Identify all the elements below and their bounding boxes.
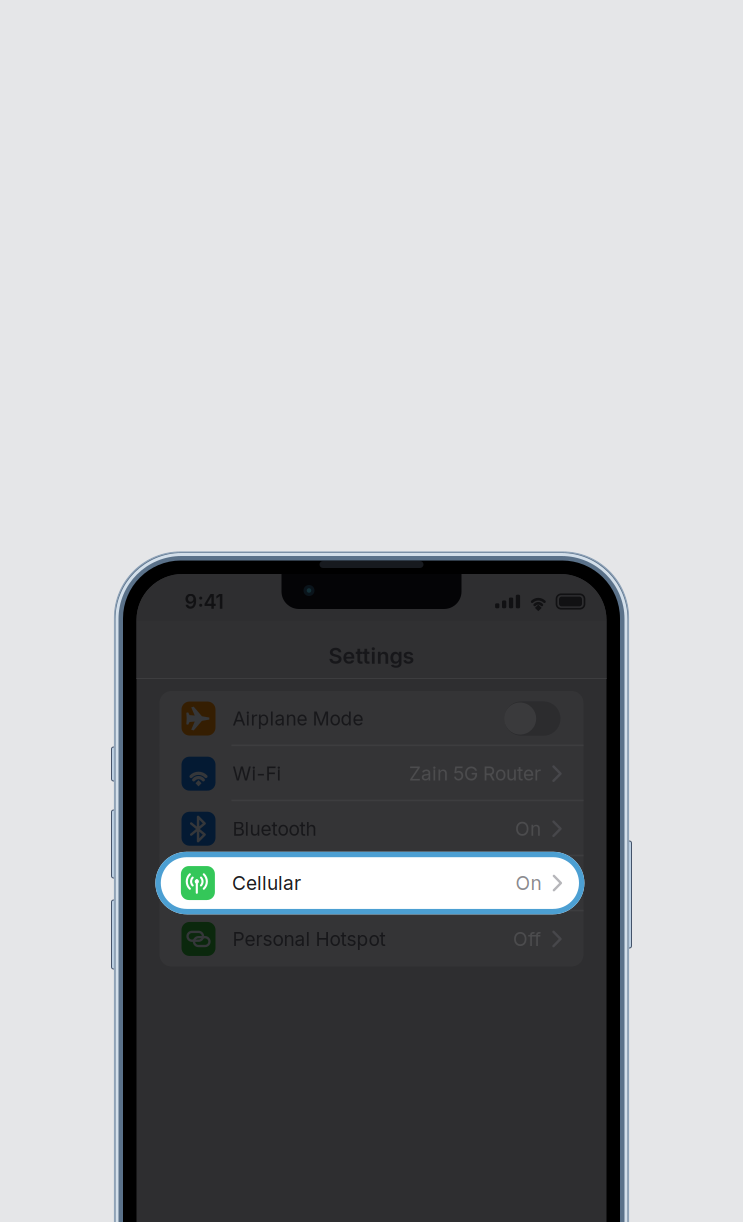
staticText: On	[515, 872, 541, 895]
button[interactable]: Bluetooth	[159, 801, 583, 856]
staticText: 9:41	[184, 590, 223, 613]
staticText: Bluetooth	[232, 817, 316, 840]
staticText: Airplane Mode	[232, 707, 363, 730]
staticText: Wi-Fi	[232, 762, 281, 785]
staticText: Personal Hotspot	[232, 927, 385, 950]
button[interactable]: Airplane Mode	[159, 691, 583, 746]
button[interactable]: Personal Hotspot	[159, 911, 583, 966]
staticText: Cellular	[232, 871, 301, 895]
staticText: On	[515, 871, 541, 895]
staticText: Off	[513, 927, 541, 950]
staticText: On	[515, 817, 541, 840]
staticText: Zain 5G Router	[409, 762, 541, 785]
button[interactable]: Cellular	[159, 856, 583, 911]
button[interactable]: Cellular	[155, 852, 584, 914]
staticText: Cellular	[232, 872, 301, 895]
button[interactable]: Wi-Fi	[159, 746, 583, 801]
staticText: Settings	[328, 643, 414, 669]
